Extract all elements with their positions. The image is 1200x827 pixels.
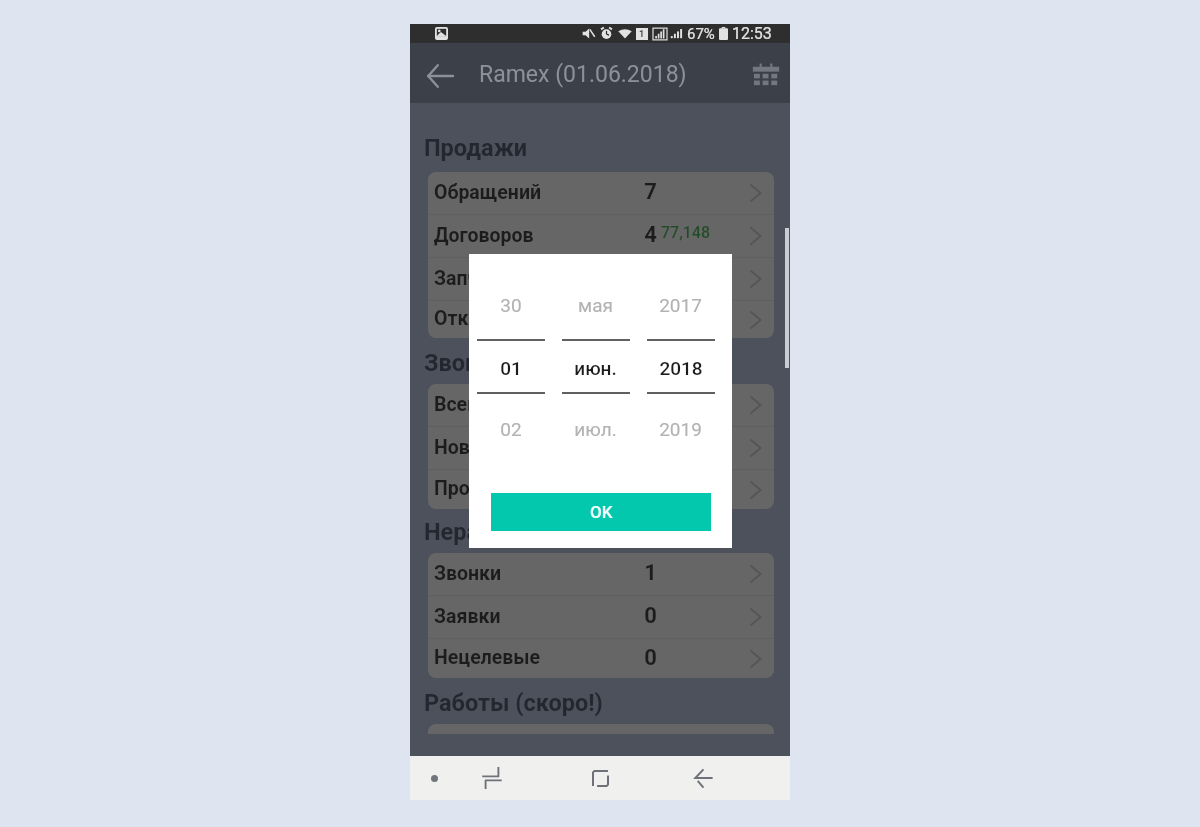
- staticText: 30: [500, 294, 522, 316]
- staticText: Просрочено: [434, 477, 546, 500]
- button[interactable]: 2017: [638, 292, 723, 318]
- staticText: Неразобранное: [424, 518, 596, 546]
- button[interactable]: Switch apps: [475, 761, 509, 795]
- button[interactable]: Нецелевые: [428, 639, 774, 678]
- staticText: Отказы: [434, 307, 505, 330]
- staticText: июл.: [574, 418, 617, 440]
- button[interactable]: 01: [469, 355, 553, 381]
- staticText: 12:53: [732, 24, 772, 43]
- button[interactable]: Recents: [583, 761, 617, 795]
- staticText: 1: [639, 29, 645, 40]
- button[interactable]: июл.: [553, 416, 638, 442]
- staticText: 67%: [687, 25, 715, 43]
- staticText: 02: [500, 418, 522, 440]
- staticText: Заявки: [434, 605, 501, 628]
- staticText: Ramex (01.06.2018): [479, 61, 687, 88]
- button[interactable]: 2018: [638, 355, 723, 381]
- button[interactable]: Заявки: [428, 596, 774, 638]
- staticText: 2019: [659, 418, 702, 440]
- staticText: 7: [644, 179, 657, 205]
- button[interactable]: Всего: [428, 384, 774, 426]
- staticText: Нецелевые: [434, 646, 540, 669]
- staticText: Звонки: [434, 562, 502, 585]
- staticText: 13: [640, 384, 660, 425]
- button[interactable]: Договоров: [428, 215, 774, 257]
- staticText: 77,148: [661, 223, 711, 242]
- staticText: 0: [644, 603, 657, 629]
- staticText: Обращений: [434, 181, 541, 204]
- staticText: 0: [644, 645, 657, 671]
- button[interactable]: июн.: [553, 355, 638, 381]
- staticText: Звонки: [424, 349, 505, 377]
- button[interactable]: Отказы: [428, 301, 774, 338]
- button[interactable]: Back: [418, 54, 462, 98]
- staticText: 2017: [659, 294, 702, 316]
- staticText: Запчасти: [434, 267, 520, 290]
- button[interactable]: Assistant: [417, 761, 451, 795]
- button[interactable]: 2019: [638, 416, 723, 442]
- staticText: Продажи: [424, 134, 528, 162]
- button[interactable]: Pick date: [744, 54, 788, 98]
- button[interactable]: Запчасти: [428, 258, 774, 300]
- staticText: 4: [644, 222, 657, 248]
- button[interactable]: Новые: [428, 427, 774, 469]
- staticText: Работы (скоро!): [424, 689, 603, 717]
- staticText: мая: [578, 294, 613, 316]
- button[interactable]: Звонки: [428, 553, 774, 595]
- staticText: Договоров: [434, 224, 534, 247]
- button[interactable]: Обращений: [428, 172, 774, 214]
- staticText: 2018: [659, 357, 703, 379]
- button[interactable]: Back: [687, 761, 721, 795]
- staticText: Новые: [434, 436, 497, 459]
- button[interactable]: OK: [491, 493, 711, 531]
- staticText: Всего: [434, 393, 487, 416]
- staticText: июн.: [574, 357, 617, 379]
- staticText: 1: [644, 560, 657, 586]
- button[interactable]: мая: [553, 292, 638, 318]
- button[interactable]: 30: [469, 292, 553, 318]
- button[interactable]: Просрочено: [428, 470, 774, 509]
- button[interactable]: 02: [469, 416, 553, 442]
- staticText: 01: [500, 357, 522, 379]
- staticText: OK: [590, 502, 613, 522]
- staticText: 1: [644, 476, 657, 502]
